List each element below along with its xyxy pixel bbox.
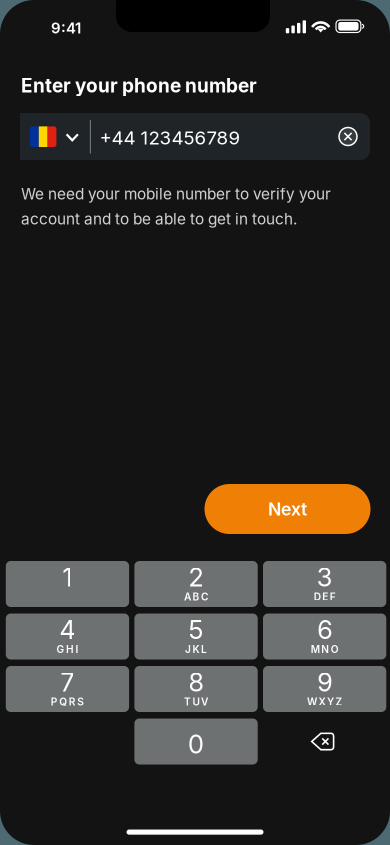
staticText: WXYZ — [307, 696, 342, 708]
staticText: 7 — [60, 667, 74, 698]
button[interactable]: Select country code — [20, 113, 89, 160]
staticText: 0 — [188, 729, 204, 760]
staticText: Next — [268, 498, 307, 520]
staticText: 1 — [62, 562, 72, 593]
button[interactable]: 8 — [134, 666, 258, 712]
staticText: DEF — [314, 591, 336, 603]
staticText: 9 — [317, 667, 332, 698]
staticText: +44 123456789 — [99, 126, 240, 149]
staticText: Enter your phone number — [21, 74, 257, 97]
button[interactable]: 7 — [6, 666, 129, 712]
button[interactable]: Next — [204, 484, 370, 534]
staticText: 5 — [189, 614, 204, 645]
button[interactable]: 3 — [263, 561, 386, 607]
button[interactable]: 2 — [134, 561, 258, 607]
staticText: PQRS — [51, 696, 84, 708]
staticText: ABC — [184, 591, 208, 603]
staticText: We need your mobile number to verify you… — [21, 185, 331, 203]
staticText: 9:41 — [51, 19, 81, 37]
button[interactable]: 0 — [134, 718, 258, 764]
button[interactable]: 4 — [6, 613, 129, 659]
staticText: TUV — [184, 696, 208, 708]
staticText: JKL — [185, 643, 207, 655]
staticText: 2 — [189, 562, 204, 593]
staticText: 8 — [189, 667, 204, 698]
staticText: 3 — [317, 562, 333, 593]
staticText: MNO — [311, 643, 339, 655]
button[interactable]: 1 — [6, 561, 129, 607]
staticText: GHI — [56, 643, 78, 655]
button[interactable]: Clear — [326, 113, 370, 160]
button[interactable]: 9 — [263, 666, 386, 712]
staticText: account and to be able to get in touch. — [21, 210, 297, 228]
staticText: 4 — [59, 614, 75, 645]
staticText: 6 — [317, 614, 332, 645]
button[interactable]: Delete — [261, 718, 384, 764]
button[interactable]: 6 — [263, 613, 386, 659]
button[interactable]: 5 — [134, 613, 258, 659]
